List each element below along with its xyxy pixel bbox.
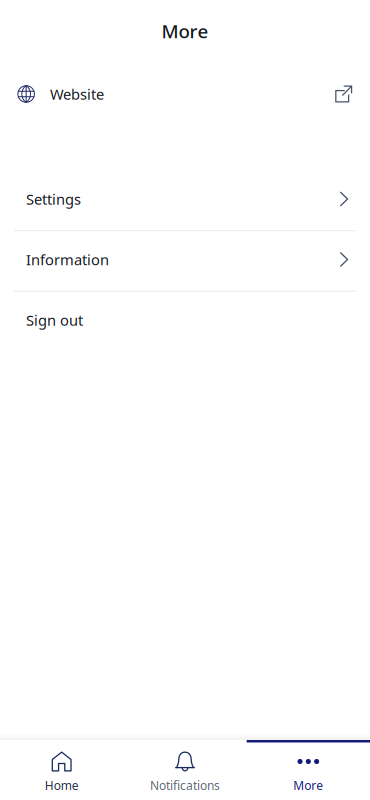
- button[interactable]: Notifications: [123, 740, 247, 800]
- staticText: Settings: [26, 189, 81, 209]
- staticText: Home: [45, 777, 79, 793]
- staticText: More: [293, 777, 323, 793]
- staticText: Website: [50, 84, 104, 104]
- staticText: Information: [26, 250, 109, 269]
- button[interactable]: Settings: [0, 171, 370, 230]
- staticText: Sign out: [26, 310, 83, 330]
- button[interactable]: Home: [0, 740, 123, 800]
- staticText: Notifications: [150, 777, 220, 793]
- button[interactable]: Information: [0, 231, 370, 290]
- button[interactable]: Website: [0, 72, 370, 116]
- button[interactable]: Sign out: [0, 292, 370, 351]
- button[interactable]: More: [247, 740, 370, 800]
- staticText: More: [161, 19, 208, 43]
